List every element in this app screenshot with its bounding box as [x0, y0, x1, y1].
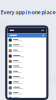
button[interactable]: Health [7, 75, 46, 80]
button[interactable]: Files [7, 64, 46, 69]
staticText: Every app in one place [0, 9, 55, 16]
button[interactable]: Music [7, 53, 46, 59]
button[interactable]: Weather [7, 96, 46, 100]
button[interactable]: Photos [7, 48, 46, 53]
button[interactable]: Clock [7, 69, 46, 75]
button[interactable]: Maps [7, 59, 46, 64]
button[interactable]: Notes [7, 43, 46, 48]
button[interactable]: Mail [7, 37, 46, 43]
button[interactable]: Books [7, 85, 46, 90]
button[interactable]: News [7, 90, 46, 96]
button[interactable]: Wallet [7, 80, 46, 85]
